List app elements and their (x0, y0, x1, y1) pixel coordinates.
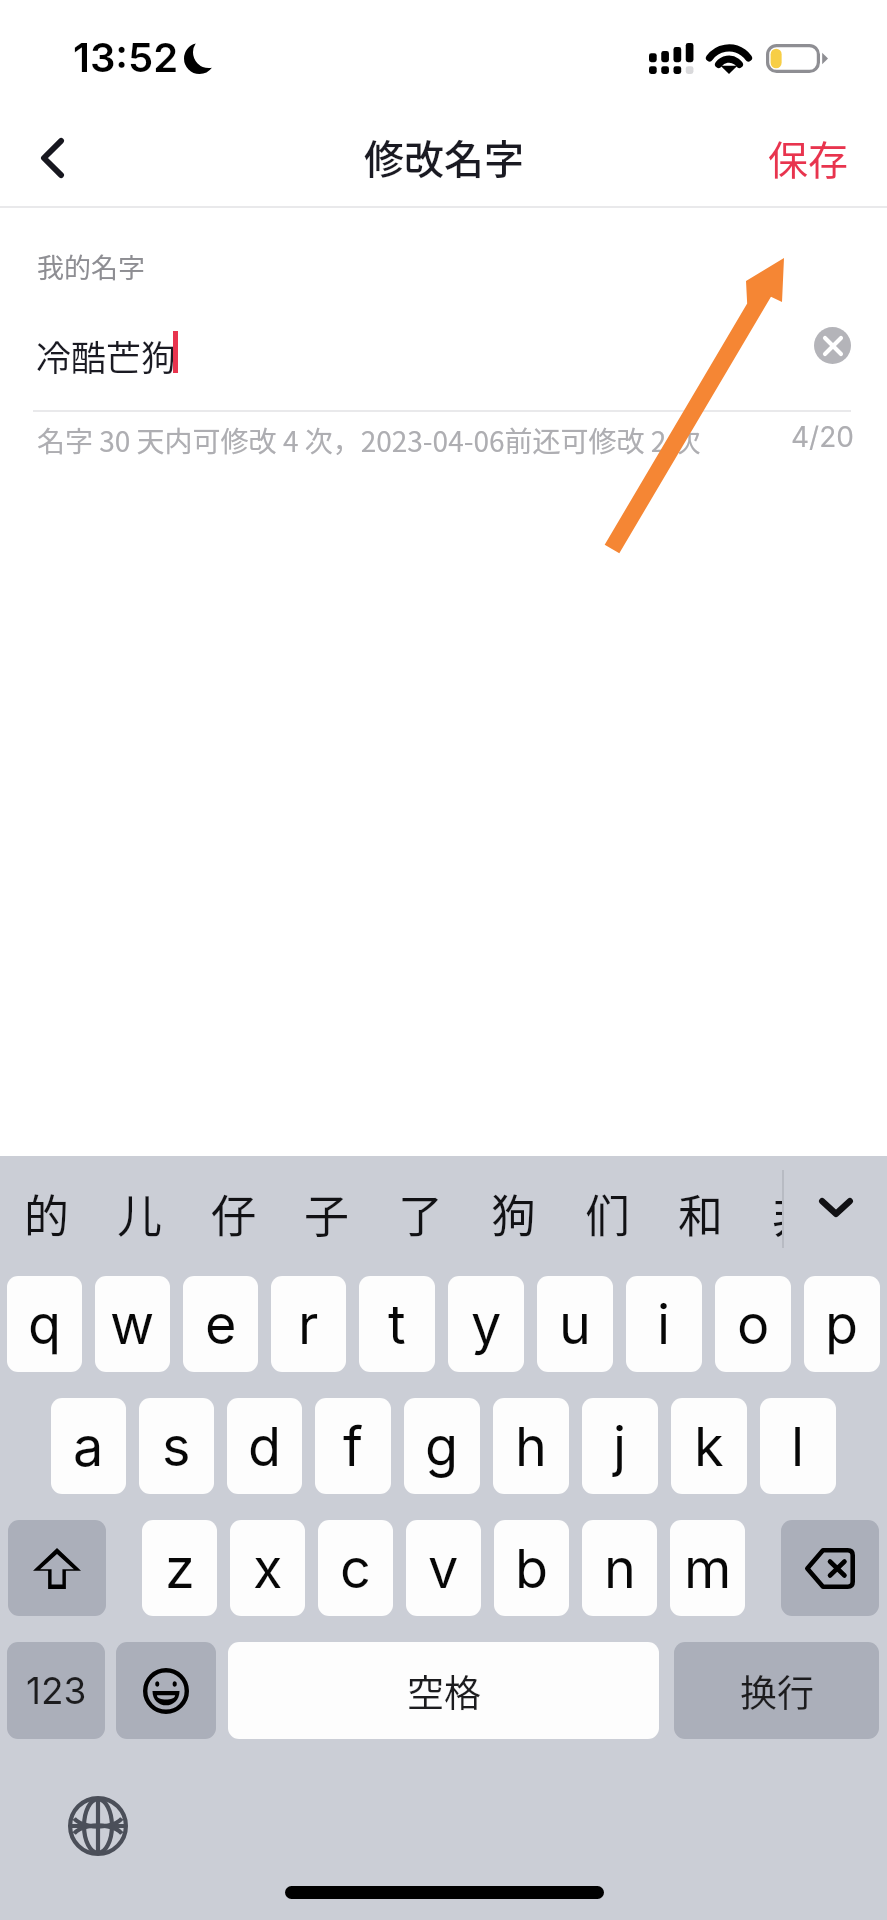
button[interactable]: s (139, 1398, 214, 1494)
staticText: 空格 (407, 1664, 481, 1718)
button[interactable]: w (95, 1276, 170, 1372)
staticText: 了 (398, 1181, 444, 1246)
staticText: c (340, 1536, 371, 1601)
staticText: o (737, 1292, 770, 1357)
button[interactable]: 子 (282, 1156, 372, 1273)
staticText: l (791, 1414, 805, 1479)
button[interactable]: 仔 (189, 1156, 279, 1273)
staticText: 4/20 (791, 420, 854, 454)
button[interactable]: c (318, 1520, 393, 1616)
button[interactable]: Switch keyboard language (54, 1782, 142, 1870)
staticText: a (73, 1414, 104, 1479)
button[interactable]: 了 (376, 1156, 466, 1273)
button[interactable]: k (671, 1398, 747, 1494)
button[interactable]: q (7, 1276, 82, 1372)
button[interactable]: Hide keyboard (799, 1147, 872, 1267)
staticText: w (110, 1292, 155, 1357)
staticText: m (684, 1536, 732, 1601)
button[interactable]: d (227, 1398, 302, 1494)
button[interactable]: v (406, 1520, 481, 1616)
staticText: g (425, 1414, 459, 1479)
staticText: x (253, 1536, 283, 1601)
staticText: 保存 (768, 129, 848, 187)
staticText: u (559, 1292, 591, 1357)
staticText: f (343, 1414, 363, 1479)
staticText: r (298, 1292, 319, 1357)
staticText: 修改名字 (364, 128, 524, 186)
button[interactable]: Backspace (781, 1520, 879, 1616)
staticText: p (825, 1292, 859, 1357)
button[interactable]: n (582, 1520, 657, 1616)
button[interactable]: u (537, 1276, 613, 1372)
button[interactable]: 和 (656, 1156, 746, 1273)
staticText: 123 (26, 1668, 87, 1713)
button[interactable]: m (670, 1520, 745, 1616)
staticText: 的 (24, 1181, 70, 1246)
button[interactable]: x (230, 1520, 305, 1616)
staticText: h (515, 1414, 547, 1479)
staticText: 我的名字 (37, 247, 145, 286)
button[interactable]: 非 (750, 1156, 782, 1273)
button[interactable]: t (359, 1276, 435, 1372)
button[interactable]: 保存 (738, 110, 887, 206)
button[interactable]: b (494, 1520, 569, 1616)
button[interactable]: 们 (563, 1156, 653, 1273)
button[interactable]: 空格 (228, 1642, 659, 1739)
staticText: j (613, 1414, 627, 1479)
button[interactable]: i (626, 1276, 702, 1372)
button[interactable]: a (51, 1398, 126, 1494)
staticText: 子 (304, 1181, 350, 1246)
staticText: y (471, 1292, 502, 1357)
staticText: q (28, 1292, 62, 1357)
button[interactable]: e (183, 1276, 258, 1372)
button[interactable]: 的 (2, 1156, 92, 1273)
staticText: s (162, 1414, 191, 1479)
button[interactable]: 儿 (95, 1156, 185, 1273)
staticText: 冷酷芒狗 (36, 330, 177, 381)
button[interactable]: Back (0, 110, 104, 206)
staticText: 13:52 (73, 33, 179, 81)
button[interactable]: r (271, 1276, 346, 1372)
staticText: e (205, 1292, 237, 1357)
staticText: k (694, 1414, 724, 1479)
staticText: 儿 (117, 1181, 163, 1246)
button[interactable]: o (715, 1276, 791, 1372)
button[interactable]: Emoji (116, 1642, 216, 1739)
staticText: 狗 (491, 1181, 537, 1246)
staticText: b (515, 1536, 549, 1601)
button[interactable]: 狗 (469, 1156, 559, 1273)
button[interactable]: h (493, 1398, 569, 1494)
staticText: t (388, 1292, 406, 1357)
button[interactable]: 换行 (674, 1642, 879, 1739)
staticText: 名字 30 天内可修改 4 次，2023-04-06前还可修改 2 次 (37, 420, 701, 461)
staticText: z (165, 1536, 195, 1601)
staticText: n (604, 1536, 636, 1601)
button[interactable]: Clear text (806, 319, 859, 372)
button[interactable]: 123 (7, 1642, 105, 1739)
button[interactable]: Shift (8, 1520, 106, 1616)
staticText: d (248, 1414, 282, 1479)
button[interactable]: j (582, 1398, 658, 1494)
button[interactable]: l (760, 1398, 836, 1494)
button[interactable]: z (142, 1520, 217, 1616)
staticText: i (657, 1292, 671, 1357)
button[interactable]: g (404, 1398, 480, 1494)
staticText: 仔 (211, 1181, 257, 1246)
staticText: 非 (772, 1181, 782, 1246)
staticText: 们 (585, 1181, 631, 1246)
button[interactable]: f (315, 1398, 391, 1494)
staticText: v (428, 1536, 459, 1601)
button[interactable]: y (448, 1276, 524, 1372)
staticText: 换行 (740, 1664, 814, 1718)
button[interactable]: p (804, 1276, 880, 1372)
staticText: 和 (678, 1181, 724, 1246)
